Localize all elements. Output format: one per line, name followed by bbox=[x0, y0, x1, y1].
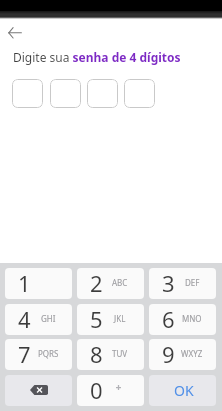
staticText: DEF bbox=[185, 277, 200, 288]
staticText: 8 bbox=[90, 339, 103, 369]
button[interactable]: 3 bbox=[149, 268, 216, 299]
button[interactable] bbox=[87, 79, 118, 108]
button[interactable]: Back bbox=[2, 22, 28, 44]
staticText: Digite sua senha de 4 dígitos bbox=[13, 49, 181, 65]
staticText: PQRS bbox=[38, 348, 59, 359]
staticText: 9 bbox=[162, 339, 175, 369]
button[interactable]: 2 bbox=[77, 268, 144, 299]
staticText: OK bbox=[174, 381, 194, 400]
staticText: 2 bbox=[90, 268, 103, 298]
button[interactable]: Backspace bbox=[5, 375, 72, 406]
staticText: JKL bbox=[114, 313, 126, 324]
staticText: 3 bbox=[162, 268, 175, 298]
button[interactable]: 7 bbox=[5, 339, 72, 370]
staticText: TUV bbox=[112, 348, 128, 359]
button[interactable]: 6 bbox=[149, 304, 216, 335]
button[interactable]: 5 bbox=[77, 304, 144, 335]
button[interactable]: 8 bbox=[77, 339, 144, 370]
staticText: GHI bbox=[41, 313, 56, 324]
button[interactable] bbox=[50, 79, 81, 108]
button[interactable]: OK bbox=[149, 375, 216, 406]
staticText: 7 bbox=[18, 339, 31, 369]
staticText: MNO bbox=[182, 313, 202, 324]
button[interactable] bbox=[124, 79, 155, 108]
button[interactable]: 1 bbox=[5, 268, 72, 299]
button[interactable]: 4 bbox=[5, 304, 72, 335]
button[interactable]: 9 bbox=[149, 339, 216, 370]
staticText: 6 bbox=[162, 304, 175, 334]
staticText: 0 bbox=[90, 375, 103, 405]
staticText: ABC bbox=[112, 277, 128, 288]
staticText: 1 bbox=[18, 268, 31, 298]
button[interactable] bbox=[12, 79, 43, 108]
staticText: WXYZ bbox=[181, 348, 203, 359]
staticText: 5 bbox=[90, 304, 103, 334]
staticText: 4 bbox=[18, 304, 31, 334]
button[interactable]: 0 bbox=[77, 375, 144, 406]
